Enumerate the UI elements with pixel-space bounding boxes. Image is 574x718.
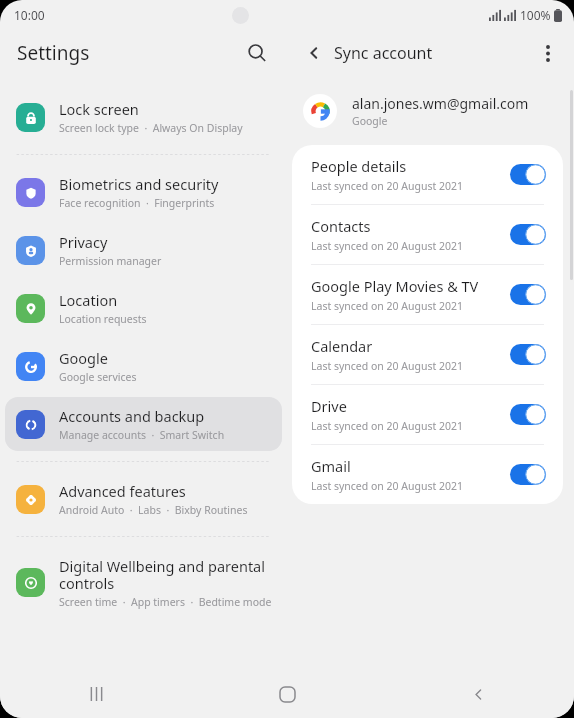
button[interactable]: More options — [532, 37, 564, 69]
button[interactable]: Contacts — [292, 205, 563, 264]
staticText: Google — [59, 348, 108, 368]
staticText: Screen lock type · Always On Display — [59, 121, 243, 135]
staticText: Location requests — [59, 312, 147, 326]
button[interactable]: Drive — [292, 385, 563, 444]
button[interactable]: Back — [383, 670, 574, 718]
staticText: Accounts and backup — [59, 406, 205, 426]
staticText: Privacy — [59, 232, 108, 252]
staticText: Contacts — [311, 216, 371, 236]
staticText: Gmail — [311, 456, 351, 476]
staticText: Advanced features — [59, 481, 186, 501]
staticText: Google — [352, 114, 388, 128]
button[interactable]: Sync toggle — [510, 404, 546, 425]
button[interactable]: Biometrics and security — [5, 165, 282, 219]
staticText: Drive — [311, 396, 347, 416]
button[interactable]: Back — [298, 37, 330, 69]
button[interactable]: Lock screen — [5, 90, 282, 144]
staticText: Last synced on 20 August 2021 — [311, 179, 463, 193]
button[interactable]: Sync toggle — [510, 164, 546, 185]
staticText: Last synced on 20 August 2021 — [311, 479, 463, 493]
button[interactable]: Recents — [0, 670, 192, 718]
button[interactable]: Calendar — [292, 325, 563, 384]
staticText: 10:00 — [14, 7, 45, 23]
staticText: Biometrics and security — [59, 174, 219, 194]
staticText: alan.jones.wm@gmail.com — [352, 94, 529, 113]
staticText: Settings — [17, 40, 90, 66]
staticText: Last synced on 20 August 2021 — [311, 419, 463, 433]
staticText: People details — [311, 156, 407, 176]
staticText: Last synced on 20 August 2021 — [311, 299, 463, 313]
button[interactable]: Google Play Movies & TV — [292, 265, 563, 324]
button[interactable]: Search — [239, 35, 275, 71]
staticText: Calendar — [311, 336, 373, 356]
staticText: Google services — [59, 370, 137, 384]
staticText: Last synced on 20 August 2021 — [311, 359, 463, 373]
button[interactable]: Sync toggle — [510, 224, 546, 245]
staticText: Lock screen — [59, 99, 139, 119]
button[interactable]: Location — [5, 281, 282, 335]
staticText: Face recognition · Fingerprints — [59, 196, 215, 210]
staticText: Android Auto · Labs · Bixby Routines — [59, 503, 248, 517]
button[interactable]: Sync toggle — [510, 284, 546, 305]
staticText: Sync account — [334, 42, 433, 64]
staticText: Location — [59, 290, 118, 310]
button[interactable]: Sync toggle — [510, 464, 546, 485]
button[interactable]: People details — [292, 145, 563, 204]
button[interactable]: Privacy — [5, 223, 282, 277]
button[interactable]: Home — [192, 670, 383, 718]
staticText: Screen time · App timers · Bedtime mode — [59, 595, 272, 609]
button[interactable]: Google — [5, 339, 282, 393]
staticText: Permission manager — [59, 254, 162, 268]
button[interactable]: Accounts and backup — [5, 397, 282, 451]
button[interactable]: alan.jones.wm@gmail.com — [287, 90, 574, 132]
staticText: Google Play Movies & TV — [311, 276, 479, 296]
button[interactable]: Advanced features — [5, 472, 282, 526]
staticText: Last synced on 20 August 2021 — [311, 239, 463, 253]
staticText: Digital Wellbeing and parental controls — [59, 556, 265, 593]
staticText: 100% — [520, 7, 551, 23]
button[interactable]: Gmail — [292, 445, 563, 504]
button[interactable]: Digital Wellbeing and parental controls — [5, 547, 282, 618]
button[interactable]: Sync toggle — [510, 344, 546, 365]
staticText: Manage accounts · Smart Switch — [59, 428, 225, 442]
